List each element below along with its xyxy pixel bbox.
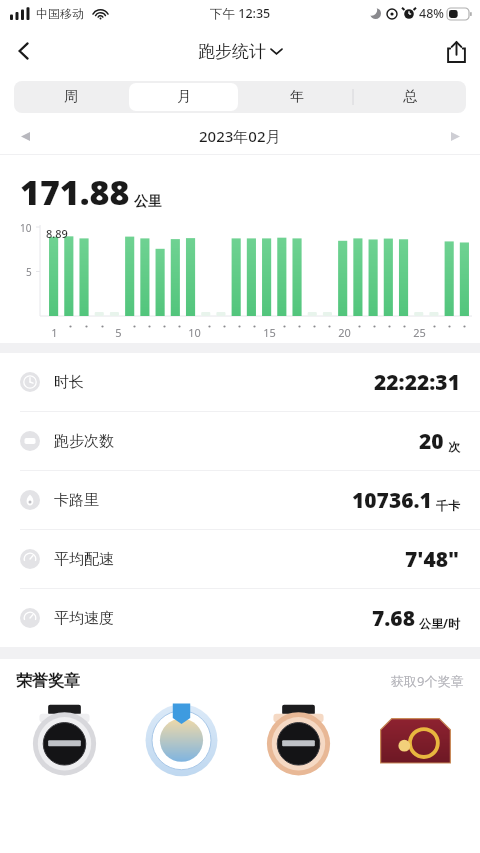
staticText: 时长: [54, 373, 84, 392]
staticText: 获取9个奖章: [391, 672, 464, 690]
staticText: 7.68: [372, 604, 415, 633]
staticText: 10: [188, 325, 201, 340]
staticText: 总: [403, 88, 417, 106]
button[interactable]: Next month: [440, 121, 470, 151]
button[interactable]: 荣誉奖章: [0, 659, 480, 703]
button[interactable]: 跑步统计: [198, 41, 282, 62]
button[interactable]: 年: [242, 83, 351, 111]
staticText: 平均配速: [54, 550, 114, 569]
button[interactable]: 月: [129, 83, 238, 111]
button[interactable]: Share: [432, 27, 480, 75]
staticText: 10736.1: [352, 486, 432, 515]
button[interactable]: Back: [0, 27, 48, 75]
staticText: 20: [338, 325, 351, 340]
staticText: 荣誉奖章: [16, 671, 80, 691]
staticText: 2023年02月: [199, 126, 281, 146]
staticText: 中国移动: [36, 6, 84, 21]
staticText: 千卡: [436, 498, 460, 513]
staticText: 20: [419, 427, 444, 456]
button[interactable]: 总: [355, 83, 464, 111]
button[interactable]: [361, 703, 470, 763]
staticText: 卡路里: [54, 491, 99, 510]
staticText: 平均速度: [54, 609, 114, 628]
button[interactable]: 平均配速: [0, 530, 480, 588]
staticText: 年: [290, 88, 304, 106]
staticText: 月: [177, 88, 191, 106]
button[interactable]: 跑步次数: [0, 412, 480, 470]
button[interactable]: [244, 703, 353, 763]
staticText: 22:22:31: [374, 368, 460, 397]
button[interactable]: [127, 703, 236, 763]
staticText: 跑步统计: [198, 41, 266, 62]
staticText: 周: [64, 88, 78, 106]
button[interactable]: [10, 703, 119, 763]
staticText: 171.88: [20, 169, 130, 215]
staticText: 公里: [134, 193, 162, 211]
staticText: 跑步次数: [54, 432, 114, 451]
staticText: 公里/时: [419, 615, 460, 631]
staticText: 15: [263, 325, 276, 340]
staticText: 8.89: [46, 226, 68, 241]
staticText: 5: [115, 325, 122, 340]
staticText: 次: [448, 439, 460, 454]
staticText: 10: [20, 221, 32, 235]
staticText: 25: [413, 325, 426, 340]
button[interactable]: 平均速度: [0, 589, 480, 647]
button[interactable]: 卡路里: [0, 471, 480, 529]
button[interactable]: 周: [16, 83, 125, 111]
staticText: 1: [51, 325, 58, 340]
button[interactable]: Previous month: [10, 121, 40, 151]
button[interactable]: 时长: [0, 353, 480, 411]
staticText: 下午 12:35: [210, 5, 271, 22]
staticText: 5: [26, 265, 32, 279]
staticText: 48%: [419, 5, 444, 22]
staticText: 7'48": [405, 545, 460, 574]
